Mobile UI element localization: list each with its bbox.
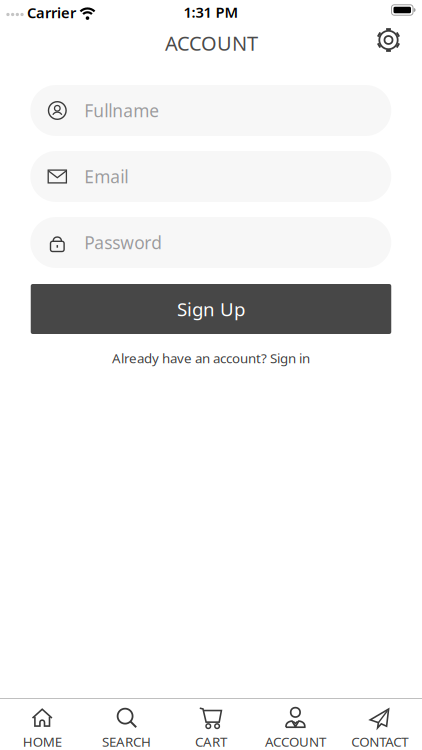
button[interactable]: Password <box>30 217 391 268</box>
staticText: ACCOUNT <box>165 30 258 56</box>
staticText: HOME <box>23 733 62 750</box>
button[interactable]: Already have an account? Sign in <box>112 349 310 367</box>
button[interactable]: Fullname <box>30 85 391 136</box>
button[interactable]: Email <box>30 151 391 202</box>
staticText: Already have an account? Sign in <box>112 349 310 367</box>
staticText: Fullname <box>84 99 159 122</box>
staticText: Sign Up <box>177 297 245 321</box>
button[interactable]: Sign Up <box>31 284 391 334</box>
staticText: CONTACT <box>351 733 408 750</box>
button[interactable]: ACCOUNT <box>253 699 338 750</box>
staticText: Carrier <box>27 3 76 22</box>
staticText: Email <box>84 165 128 188</box>
staticText: ACCOUNT <box>265 733 326 750</box>
staticText: Password <box>84 231 162 254</box>
button[interactable]: HOME <box>0 699 84 750</box>
button[interactable]: Settings <box>375 26 402 53</box>
staticText: SEARCH <box>102 733 151 750</box>
staticText: 1:31 PM <box>183 2 238 22</box>
button[interactable]: SEARCH <box>84 699 169 750</box>
staticText: CART <box>195 733 227 750</box>
button[interactable]: CONTACT <box>338 699 422 750</box>
button[interactable]: CART <box>169 699 253 750</box>
